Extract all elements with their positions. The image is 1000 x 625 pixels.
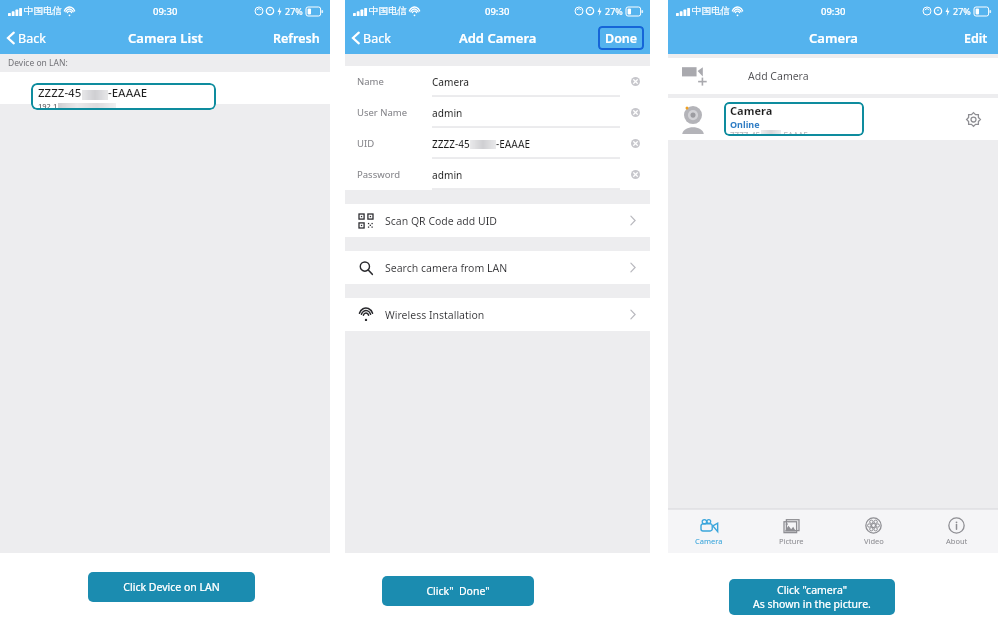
staticText: Done: [605, 30, 638, 47]
button[interactable]: Settings: [960, 106, 986, 132]
button[interactable]: Back: [352, 22, 391, 54]
button[interactable]: Name: [345, 66, 650, 97]
staticText: Back: [363, 30, 391, 47]
button[interactable]: Scan QR Code add UID: [345, 204, 650, 237]
staticText: 09:30: [485, 5, 510, 18]
button[interactable]: Wireless Installation: [345, 298, 650, 331]
staticText: Search camera from LAN: [385, 261, 508, 275]
staticText: ZZZZ-45: [38, 85, 82, 101]
staticText: -EAAAE: [108, 85, 148, 101]
staticText: Scan QR Code add UID: [385, 214, 497, 228]
staticText: Wireless Installation: [385, 308, 485, 322]
button[interactable]: User Name: [345, 97, 650, 128]
staticText: ZZZZ-45: [730, 130, 761, 136]
staticText: User Name: [357, 106, 432, 119]
staticText: Click" Done": [426, 584, 490, 598]
staticText: -EAAAE: [496, 137, 530, 151]
button[interactable]: Clear Name: [620, 66, 650, 97]
staticText: admin: [432, 168, 463, 182]
button[interactable]: Edit: [964, 30, 988, 47]
staticText: Picture: [779, 536, 804, 546]
staticText: 27%: [953, 5, 971, 17]
staticText: Back: [18, 30, 46, 47]
staticText: Camera: [695, 536, 723, 546]
staticText: UID: [357, 137, 432, 150]
staticText: 中国电信: [692, 5, 730, 17]
button[interactable]: Camera: [668, 509, 750, 553]
staticText: Name: [357, 75, 432, 88]
staticText: Add Camera: [459, 29, 537, 47]
staticText: Camera List: [128, 29, 203, 47]
button[interactable]: Back: [7, 22, 46, 54]
button[interactable]: Clear User Name: [620, 97, 650, 128]
staticText: Edit: [964, 30, 988, 47]
button[interactable]: Click Device on LAN: [88, 572, 255, 602]
staticText: Click "camera": [777, 583, 847, 597]
staticText: As shown in the picture.: [753, 597, 871, 611]
button[interactable]: Camera: [724, 102, 864, 136]
staticText: Refresh: [273, 30, 320, 47]
staticText: 09:30: [821, 5, 846, 18]
button[interactable]: Click" Done": [382, 576, 534, 606]
staticText: 192.1: [38, 101, 58, 110]
staticText: Add Camera: [748, 69, 809, 83]
staticText: Click Device on LAN: [123, 580, 220, 594]
staticText: Password: [357, 168, 432, 181]
button[interactable]: Click "camera": [729, 579, 895, 615]
staticText: ZZZZ-45: [432, 137, 470, 151]
staticText: Online: [730, 118, 760, 130]
staticText: 27%: [605, 5, 623, 17]
button[interactable]: Picture: [750, 509, 832, 553]
staticText: Camera: [730, 103, 773, 118]
staticText: 09:30: [153, 5, 178, 18]
button[interactable]: UID: [345, 128, 650, 159]
staticText: admin: [432, 106, 463, 120]
button[interactable]: Search camera from LAN: [345, 251, 650, 284]
staticText: Device on LAN:: [8, 57, 68, 69]
staticText: -EAAAE: [781, 130, 808, 136]
staticText: 27%: [285, 5, 303, 17]
button[interactable]: Video: [832, 509, 915, 553]
staticText: Camera: [432, 75, 470, 89]
button[interactable]: Clear Password: [620, 159, 650, 190]
staticText: 中国电信: [369, 5, 407, 17]
button[interactable]: Done: [598, 26, 644, 50]
button[interactable]: About: [915, 509, 998, 553]
staticText: About: [946, 536, 968, 546]
button[interactable]: Refresh: [273, 30, 320, 47]
staticText: Camera: [809, 29, 858, 47]
button[interactable]: ZZZZ-45: [31, 83, 216, 110]
button[interactable]: Settings: [668, 98, 998, 140]
button[interactable]: Password: [345, 159, 650, 190]
staticText: 中国电信: [24, 5, 62, 17]
button[interactable]: Clear UID: [620, 128, 650, 159]
staticText: Video: [864, 536, 884, 546]
button[interactable]: Add Camera: [668, 58, 998, 94]
